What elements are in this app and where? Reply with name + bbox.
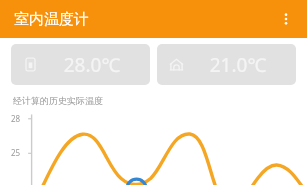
staticText: 经计算的历史实际温度 — [13, 95, 103, 106]
staticText: 28 — [11, 113, 21, 124]
button[interactable]: More options — [270, 3, 302, 35]
button[interactable]: Room temperature — [157, 44, 296, 85]
staticText: 室内温度计 — [14, 10, 89, 29]
staticText: 28.0℃ — [46, 52, 138, 78]
staticText: 21.0℃ — [192, 52, 284, 78]
staticText: 25 — [11, 147, 21, 158]
button[interactable]: Device temperature — [11, 44, 150, 85]
